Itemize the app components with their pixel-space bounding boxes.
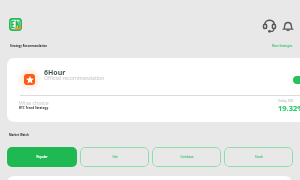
button[interactable]: More Strategies [272, 44, 293, 48]
staticText: More Strategies [272, 44, 293, 48]
button[interactable]: Hot [80, 147, 149, 167]
staticText: Today ROI [278, 99, 294, 103]
staticText: Popular [36, 155, 48, 159]
button[interactable]: Stock [224, 147, 293, 167]
staticText: Hot [112, 155, 118, 159]
button[interactable]: Customer support [262, 18, 277, 33]
button[interactable]: App logo [9, 18, 22, 31]
staticText: 6Hour [44, 68, 66, 78]
staticText: Coinbase [180, 155, 194, 159]
button[interactable]: Popular [7, 147, 77, 167]
staticText: BTC Trend Strategy [19, 106, 49, 110]
button[interactable]: 6Hour [7, 58, 300, 122]
staticText: Official recommendation [44, 74, 105, 81]
staticText: 19.32% [278, 103, 300, 113]
staticText: Wise choice [19, 99, 49, 106]
staticText: Stock [255, 155, 263, 159]
button[interactable]: Follow [293, 76, 300, 84]
button[interactable]: Coinbase [152, 147, 221, 167]
button[interactable]: Notifications [280, 18, 295, 33]
staticText: Strategy Recommendation [10, 44, 48, 48]
staticText: Market Watch [9, 133, 29, 137]
button[interactable]: Strategy Recommendation [10, 44, 48, 48]
